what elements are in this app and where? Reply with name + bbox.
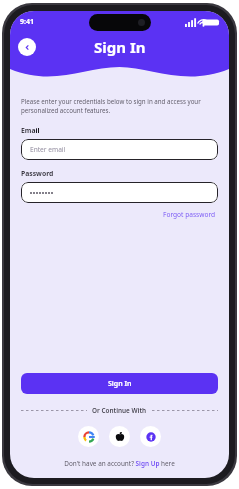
staticText: Sign In <box>108 379 132 389</box>
button[interactable]: Enter email <box>21 139 218 160</box>
staticText: 9:41 <box>20 17 34 27</box>
staticText: Don't have an account? Sign Up here <box>64 459 175 468</box>
staticText: Password <box>21 169 54 178</box>
staticText: Enter email <box>30 145 66 154</box>
button[interactable]: Back <box>18 38 36 56</box>
staticText: Or Continue With <box>92 406 147 415</box>
button[interactable]: Sign in with Google <box>78 426 99 447</box>
staticText: Please enter your credentials below to s… <box>21 97 218 115</box>
button[interactable]: Sign In <box>21 373 218 394</box>
staticText: Sign In <box>94 37 146 57</box>
button[interactable]: Forgot password <box>161 208 218 221</box>
staticText: Forgot password <box>163 210 216 219</box>
button[interactable]: Don't have an account? Sign Up here <box>10 459 229 468</box>
staticText: Email <box>21 126 40 135</box>
button[interactable] <box>21 182 218 203</box>
button[interactable]: Sign in with Apple <box>109 426 130 447</box>
button[interactable]: Sign in with Facebook <box>140 426 161 447</box>
